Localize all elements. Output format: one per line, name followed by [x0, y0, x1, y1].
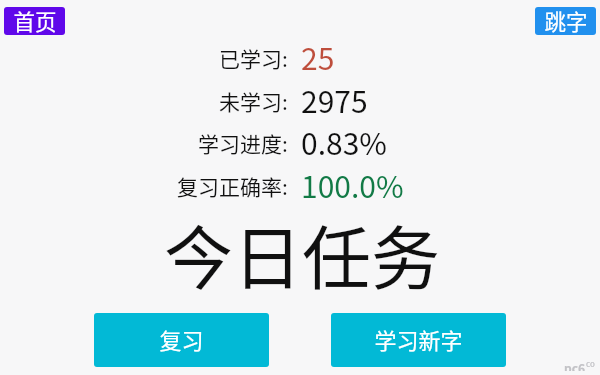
staticText: 复习正确率:	[177, 171, 288, 201]
staticText: 已学习:	[219, 43, 288, 73]
button[interactable]: 复习	[94, 313, 269, 367]
other: Watermark	[564, 359, 597, 371]
staticText: 学习新字	[374, 323, 463, 355]
button[interactable]: 学习新字	[331, 313, 506, 367]
button[interactable]: 跳字	[535, 7, 596, 35]
staticText: com	[586, 358, 597, 370]
staticText: 0.83%	[301, 120, 387, 163]
staticText: 100.0%	[301, 163, 404, 206]
staticText: 学习进度:	[198, 128, 288, 158]
button[interactable]: 首页	[4, 7, 65, 35]
staticText: 2975	[301, 78, 368, 121]
staticText: 25	[301, 35, 335, 78]
staticText: 复习	[159, 323, 204, 355]
staticText: 跳字	[544, 7, 588, 33]
staticText: 未学习:	[219, 86, 288, 116]
staticText: 首页	[13, 7, 57, 33]
staticText: pc6	[564, 359, 586, 371]
staticText: 今日任务	[164, 204, 440, 304]
